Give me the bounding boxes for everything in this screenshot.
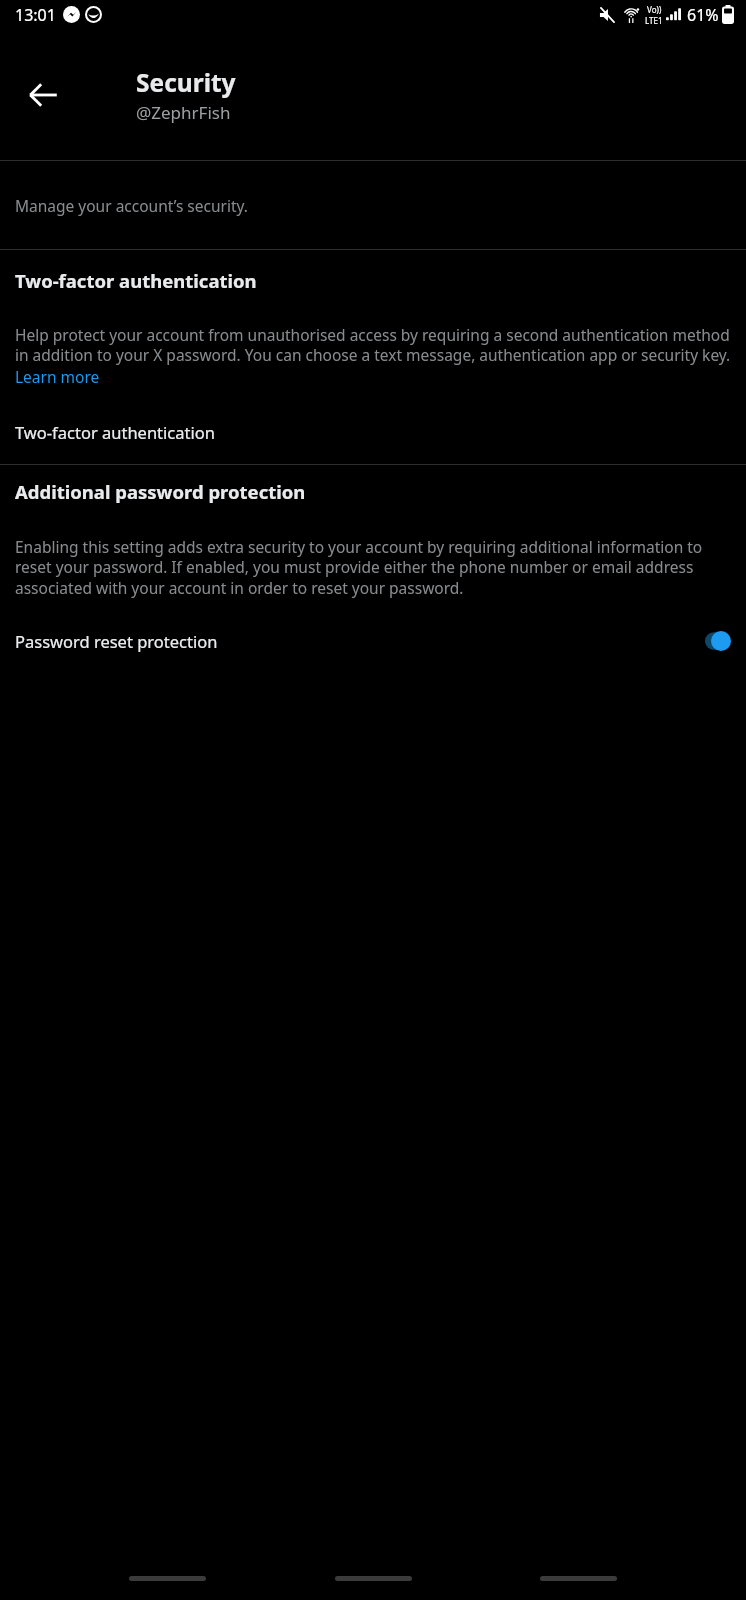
button[interactable]: Navigation xyxy=(335,1576,412,1581)
other: Password reset protection toggle xyxy=(705,631,731,651)
staticText: Enabling this setting adds extra securit… xyxy=(15,536,731,599)
staticText: Password reset protection xyxy=(15,630,218,652)
staticText: LTE1 xyxy=(645,15,663,26)
staticText: 61% xyxy=(687,4,719,26)
staticText: Security xyxy=(136,66,236,99)
button[interactable]: Learn more xyxy=(15,366,100,387)
button[interactable]: Navigation xyxy=(540,1576,617,1581)
button[interactable]: Password reset protection xyxy=(0,616,746,666)
staticText: Vo)) xyxy=(647,4,662,15)
staticText: Learn more xyxy=(15,366,100,387)
button[interactable]: Navigation xyxy=(129,1576,206,1581)
staticText: Help protect your account from unauthori… xyxy=(15,324,731,366)
staticText: 13:01 xyxy=(15,4,56,26)
button[interactable]: Back xyxy=(20,72,66,118)
staticText: Two-factor authentication xyxy=(15,421,215,443)
staticText: Two-factor authentication xyxy=(15,268,257,293)
staticText: @ZephrFish xyxy=(136,101,231,124)
staticText: Manage your account’s security. xyxy=(15,195,248,216)
staticText: Additional password protection xyxy=(15,479,306,504)
button[interactable]: Two-factor authentication xyxy=(0,411,746,453)
